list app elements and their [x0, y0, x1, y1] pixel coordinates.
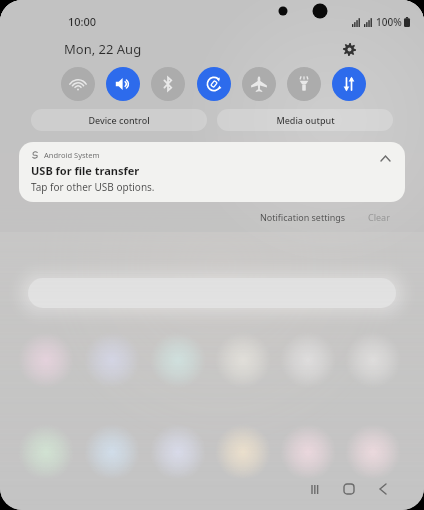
button[interactable]: Back [370, 476, 396, 502]
button[interactable]: Media output [217, 109, 393, 131]
button[interactable]: Device control [31, 109, 207, 131]
button[interactable]: Android System [19, 142, 405, 202]
button[interactable]: Flashlight [287, 67, 321, 101]
button[interactable]: Mobile data [332, 67, 366, 101]
staticText: Notification settings [260, 211, 346, 223]
button[interactable]: Sound [106, 67, 140, 101]
staticText: 10:00 [68, 14, 97, 29]
button[interactable]: Recents [302, 476, 328, 502]
staticText: Mon, 22 Aug [64, 40, 142, 58]
staticText: Android System [44, 150, 100, 160]
button[interactable]: Auto rotate [197, 67, 231, 101]
staticText: Media output [276, 114, 335, 126]
button[interactable]: Settings [336, 36, 362, 62]
staticText: USB for file transfer [31, 163, 140, 178]
staticText: Tap for other USB options. [31, 180, 155, 194]
button[interactable]: Home [336, 476, 362, 502]
button[interactable]: Clear [364, 208, 394, 226]
button[interactable]: Airplane mode [242, 67, 276, 101]
button[interactable]: Wi-Fi [61, 67, 95, 101]
staticText: Device control [88, 114, 150, 126]
staticText: Clear [368, 211, 390, 223]
button[interactable]: Collapse [377, 150, 393, 166]
button[interactable]: Notification settings [256, 208, 350, 226]
button[interactable]: Bluetooth [151, 67, 185, 101]
staticText: 100% [376, 15, 402, 29]
